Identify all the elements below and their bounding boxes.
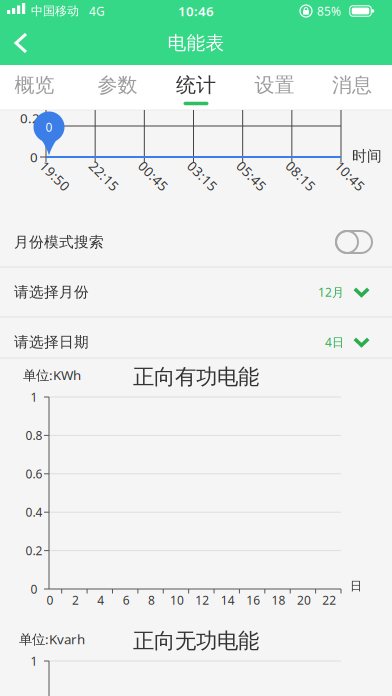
staticText: 月份模式搜索 [14,233,104,251]
staticText: 中国移动 [31,4,79,18]
staticText: 16 [246,592,260,608]
staticText: 00:45 [135,167,171,185]
button[interactable]: 时间滑块 [31,110,67,160]
staticText: 05:45 [234,167,270,185]
button[interactable]: 统计 [157,65,235,110]
staticText: 时间 [352,147,382,165]
staticText: 4 [97,592,104,608]
button[interactable]: 参数 [78,65,157,110]
staticText: 0.8 [25,427,42,443]
staticText: 03:15 [184,167,220,185]
staticText: 消息 [332,73,372,97]
button[interactable]: 请选择日期 [0,318,392,366]
staticText: 10:45 [332,167,368,185]
staticText: 0.6 [25,466,42,482]
button[interactable]: 月份模式搜索 [0,218,392,266]
staticText: 2 [72,592,79,608]
staticText: 0 [30,148,38,166]
staticText: 10:46 [178,2,214,20]
staticText: 18 [271,592,285,608]
staticText: 8 [148,592,155,608]
staticText: 4G [89,3,105,19]
staticText: 08:15 [283,167,319,185]
staticText: 12 [195,592,209,608]
staticText: 单位:Kvarh [19,630,85,648]
staticText: 1 [30,389,37,405]
button[interactable]: 请选择月份 [0,268,392,316]
button[interactable]: 概览 [0,65,74,110]
button[interactable]: 设置 [235,65,314,110]
staticText: 6 [123,592,130,608]
staticText: 电能表 [167,31,224,54]
staticText: 概览 [14,73,54,97]
staticText: 参数 [97,73,137,97]
staticText: 1 [30,653,37,669]
button[interactable]: Back [2,21,46,65]
staticText: 10 [170,592,184,608]
staticText: 0 [46,592,53,608]
staticText: 85% [317,3,341,19]
staticText: 正向有功电能 [133,364,259,390]
staticText: 0 [45,119,52,135]
staticText: 日 [350,579,362,593]
staticText: 统计 [176,73,216,97]
staticText: 22 [322,592,336,608]
staticText: 12月 [318,284,344,300]
staticText: 20 [297,592,311,608]
staticText: 0.2 [20,109,40,127]
staticText: 正向无功电能 [133,628,259,654]
staticText: 请选择日期 [14,333,89,351]
staticText: 19:50 [37,167,73,185]
staticText: 0.4 [25,504,42,520]
staticText: 0.2 [25,543,42,558]
staticText: 4日 [325,334,344,350]
staticText: 22:15 [86,167,122,185]
staticText: 14 [221,592,235,608]
button[interactable]: 消息 [313,65,391,110]
staticText: 0 [30,581,37,597]
staticText: 单位:KWh [23,366,81,384]
staticText: 请选择月份 [14,283,89,301]
staticText: 设置 [254,73,294,97]
